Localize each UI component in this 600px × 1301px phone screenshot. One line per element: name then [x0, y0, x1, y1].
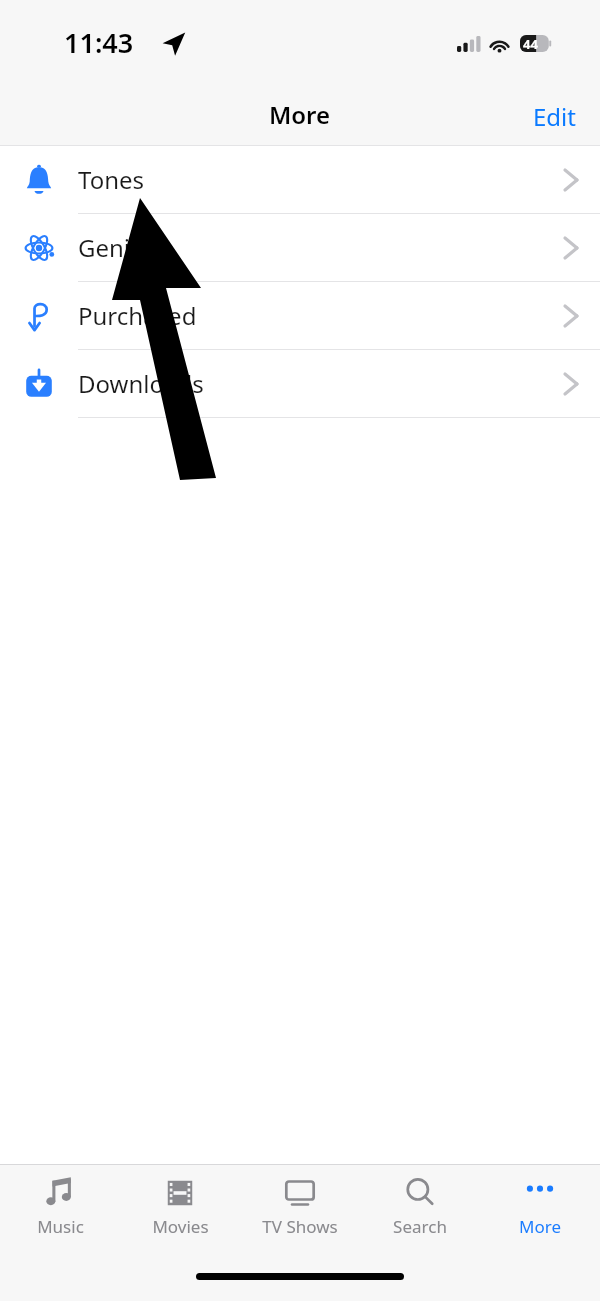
staticText: Music — [37, 1215, 84, 1238]
staticText: Movies — [152, 1215, 209, 1238]
staticText: 11:43 — [64, 24, 134, 61]
staticText: TV Shows — [262, 1215, 338, 1238]
staticText: Purchased — [78, 299, 197, 332]
button[interactable]: More — [480, 1165, 600, 1249]
button[interactable]: Edit — [509, 92, 600, 141]
staticText: 44 — [523, 35, 538, 52]
button[interactable]: Movies — [120, 1165, 240, 1249]
button[interactable]: Music — [0, 1165, 120, 1249]
staticText: Downloads — [78, 367, 204, 400]
button[interactable]: Purchased — [0, 282, 600, 350]
staticText: More — [519, 1215, 561, 1238]
button[interactable]: Search — [360, 1165, 480, 1249]
button[interactable]: Tones — [0, 146, 600, 214]
button[interactable]: Genius — [0, 214, 600, 282]
button[interactable]: TV Shows — [240, 1165, 360, 1249]
staticText: Genius — [78, 231, 157, 264]
staticText: More — [269, 98, 331, 131]
button[interactable]: Downloads — [0, 350, 600, 418]
staticText: Tones — [78, 163, 145, 196]
staticText: Search — [393, 1215, 447, 1238]
staticText: Edit — [533, 100, 576, 133]
